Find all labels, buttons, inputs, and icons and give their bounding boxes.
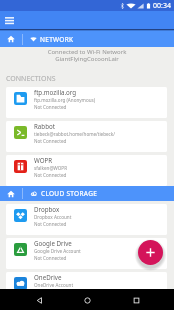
button[interactable]: ftp.mozilla.org [6,87,167,118]
button[interactable]: CLOUD STORAGE [30,186,98,201]
button[interactable]: Home [77,290,97,310]
staticText: CLOUD STORAGE [41,189,98,198]
staticText: Rabbot [34,122,55,130]
staticText: sfalken@WOPR [34,165,68,171]
button[interactable]: Menu [2,13,16,27]
button[interactable]: Add connection [138,240,163,265]
button[interactable]: Recents [126,290,146,310]
button[interactable]: Back [29,290,49,310]
staticText: Dropbox Account [34,214,72,220]
staticText: NETWORK [40,35,74,44]
staticText: WOPR [34,156,53,164]
button[interactable]: Home [0,31,22,47]
staticText: Not Connected [34,138,67,144]
staticText: Not Connected [34,172,67,178]
button[interactable]: WOPR [6,155,167,186]
staticText: Not Connected [34,255,67,261]
staticText: ftp.mozilla.org [34,88,77,96]
staticText: Google Drive [34,239,72,247]
button[interactable]: Rabbot [6,121,167,152]
staticText: Connected to Wi-Fi Network GiantFlyingCo… [0,48,174,62]
button[interactable]: NETWORK [30,31,74,47]
staticText: Google Drive Account [34,248,81,254]
staticText: Not Connected [34,221,67,227]
staticText: CONNECTIONS [6,74,56,84]
button[interactable]: Dropbox [6,204,167,235]
staticText: Dropbox [34,205,60,213]
staticText: ftp.mozilla.org (Anonymous) [34,97,96,103]
button[interactable]: Home [0,186,22,201]
staticText: OneDrive [34,273,62,281]
staticText: OneDrive Account [34,282,74,288]
button[interactable]: OneDrive [6,272,167,303]
staticText: tiebeck@rabbot.home/home/tiebeck/ [34,131,115,137]
staticText: Not Connected [34,104,67,110]
button[interactable]: Google Drive [6,238,167,269]
staticText: 00:34 [153,1,171,11]
